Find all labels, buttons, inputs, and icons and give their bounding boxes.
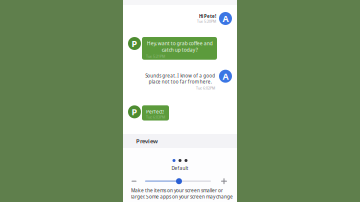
staticText: Sounds great. I know of a good place not… [145,73,215,85]
staticText: A [222,12,228,24]
staticText: Hey, want to grab coffee and catch up to… [146,40,212,53]
staticText: Tue 6:03PM [146,115,165,119]
staticText: A [222,70,228,82]
staticText: Make the items on your screen smaller or… [131,187,233,200]
staticText: Hi Pete! [199,13,216,19]
staticText: Perfect! [146,108,164,115]
staticText: Preview [136,137,158,145]
staticText: Tue 5:21PM [146,54,165,59]
staticText: Default [171,165,188,171]
staticText: P [131,37,137,49]
staticText: P [131,106,137,118]
staticText: Tue 6:02PM [196,86,215,90]
staticText: Tue 5:20PM [197,19,216,24]
